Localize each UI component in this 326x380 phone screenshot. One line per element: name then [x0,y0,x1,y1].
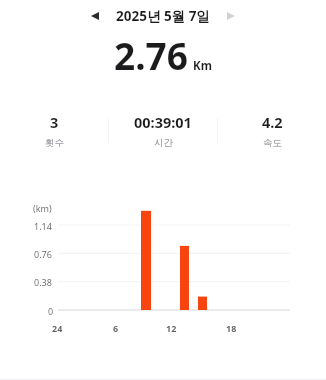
button[interactable]: Next day [218,3,244,29]
staticText: Km [193,58,212,74]
staticText: 횟수 [45,137,64,149]
staticText: (km) [33,202,52,214]
button[interactable]: 3 [0,112,108,149]
staticText: 2025년 5월 7일 [116,7,210,25]
staticText: 0 [48,305,54,317]
staticText: 0.76 [34,248,52,260]
staticText: 시간 [154,137,173,149]
staticText: 18 [226,322,237,334]
staticText: 24 [52,322,63,334]
staticText: 00:39:01 [134,112,192,132]
staticText: 1.14 [34,220,52,232]
staticText: 3 [50,112,59,132]
button[interactable]: 00:39:01 [109,112,217,149]
staticText: 12 [166,322,177,334]
button[interactable]: 4.2 [218,112,326,149]
staticText: 속도 [263,137,282,149]
button[interactable]: Previous day [82,3,108,29]
staticText: 2.76 [114,30,188,80]
staticText: 6 [113,322,119,334]
staticText: 0.38 [34,276,52,288]
staticText: 4.2 [262,112,283,132]
